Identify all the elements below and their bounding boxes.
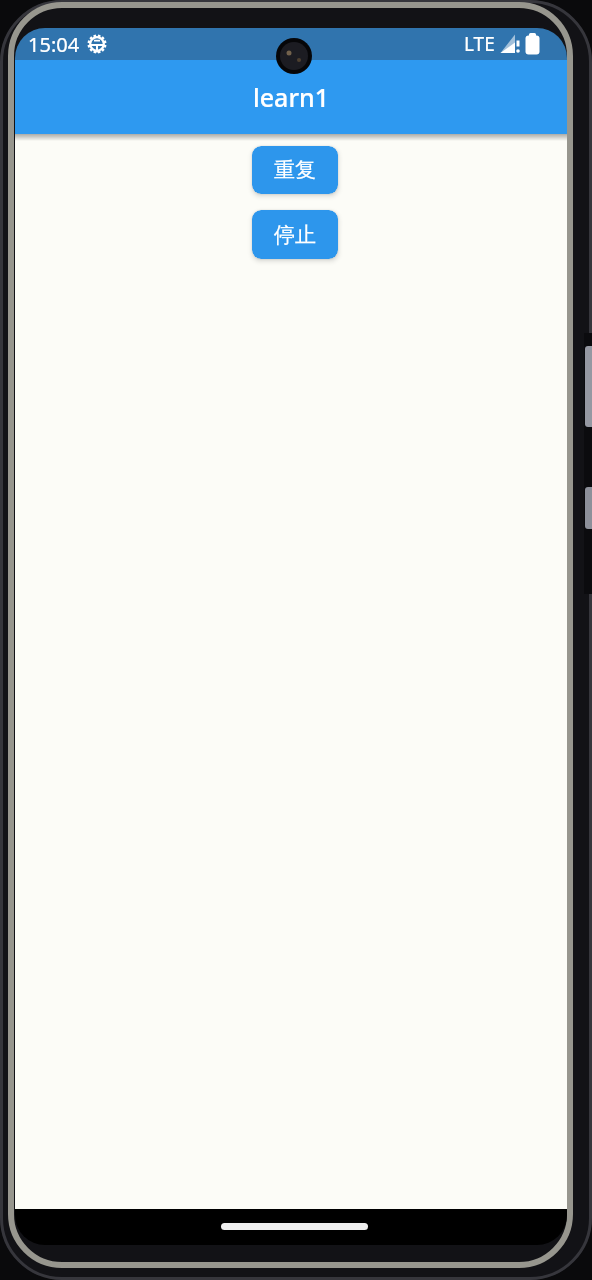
button[interactable]: 重复 [252, 146, 338, 194]
staticText: 15:04 [28, 31, 80, 58]
staticText: learn1 [253, 80, 329, 114]
staticText: 停止 [274, 222, 316, 248]
staticText: LTE [464, 31, 495, 57]
staticText: 重复 [274, 157, 316, 183]
button[interactable]: 停止 [252, 210, 338, 259]
